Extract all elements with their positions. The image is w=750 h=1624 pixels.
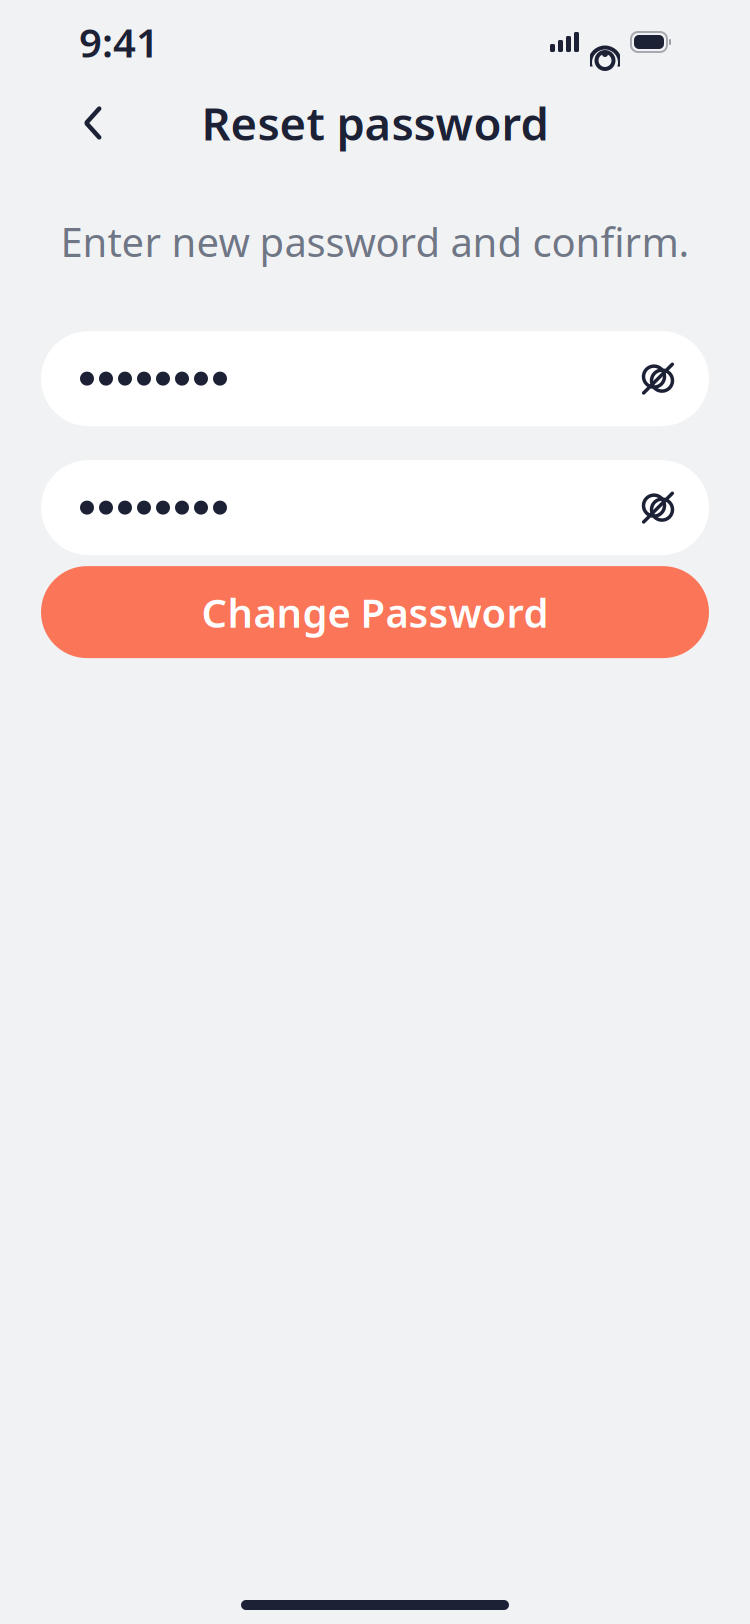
staticText: Change Password [201, 586, 548, 639]
button[interactable] [41, 460, 709, 555]
button[interactable]: Show confirmation password [631, 481, 685, 535]
button[interactable]: Change Password [41, 566, 709, 658]
button[interactable] [41, 331, 709, 426]
staticText: 9:41 [79, 15, 159, 68]
staticText: Enter new password and confirm. [60, 215, 689, 268]
button[interactable]: Back [65, 95, 121, 151]
staticText: Reset password [201, 93, 548, 153]
button[interactable]: Show new password [631, 352, 685, 406]
